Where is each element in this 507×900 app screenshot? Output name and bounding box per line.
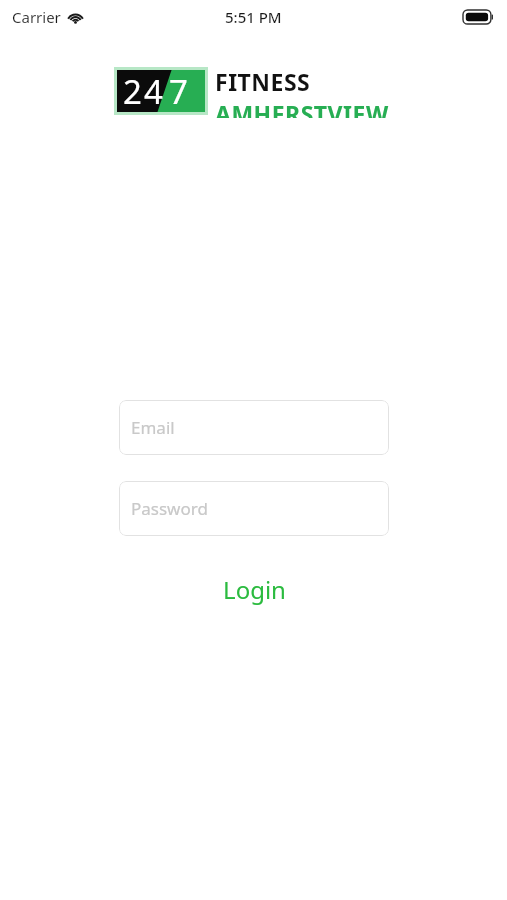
staticText: 5:51 PM (225, 7, 282, 27)
button[interactable]: Password (119, 481, 389, 536)
button[interactable]: Login (119, 566, 389, 612)
staticText: FITNESS (215, 66, 311, 97)
staticText: 4 (144, 69, 163, 111)
staticText: AMHERSTVIEW (215, 98, 389, 118)
staticText: Login (223, 573, 286, 606)
staticText: Email (131, 416, 175, 439)
staticText: Carrier (12, 7, 61, 27)
staticText: 2 (123, 69, 142, 111)
button[interactable]: Email (119, 400, 389, 455)
staticText: Password (131, 497, 208, 520)
staticText: 7 (169, 69, 188, 111)
